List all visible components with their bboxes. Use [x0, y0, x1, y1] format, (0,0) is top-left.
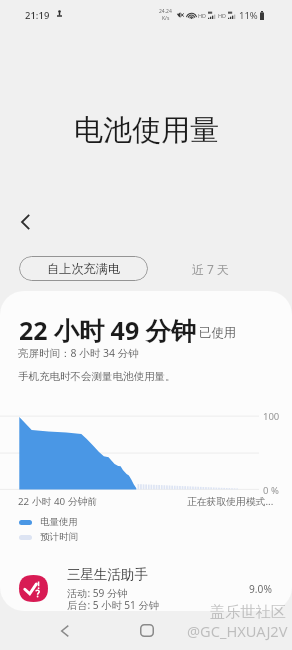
staticText: 盖乐世社区	[210, 602, 286, 621]
staticText: 电池使用量	[74, 112, 219, 149]
staticText: 近 7 天	[192, 261, 230, 277]
staticText: 正在获取使用模式...	[187, 495, 274, 508]
button[interactable]: Back	[9, 206, 41, 238]
staticText: 亮屏时间：8 小时 34 分钟	[18, 346, 139, 360]
staticText: 三星生活助手	[67, 566, 148, 583]
button[interactable]: 自上次充满电	[19, 256, 148, 281]
staticText: 预计时间	[40, 531, 78, 543]
staticText: K/s	[162, 15, 170, 22]
staticText: @GC_HXUAJ2V	[187, 621, 288, 641]
staticText: 0 %	[263, 484, 279, 497]
staticText: 22 小时 49 分钟	[19, 313, 196, 347]
staticText: 11%	[239, 9, 258, 22]
staticText: 活动: 59 分钟	[67, 586, 128, 600]
staticText: 自上次充满电	[47, 261, 121, 276]
staticText: 电量使用	[40, 516, 78, 528]
button[interactable]: Recents	[211, 611, 243, 650]
staticText: 24.24	[159, 8, 172, 15]
staticText: 已使用	[199, 325, 237, 341]
button[interactable]: 近 7 天	[182, 256, 240, 281]
staticText: 后台: 5 小时 51 分钟	[67, 598, 159, 611]
staticText: 9.0%	[249, 582, 272, 596]
staticText: 手机充电时不会测量电池使用量。	[18, 370, 176, 383]
staticText: 21:19	[25, 9, 50, 22]
staticText: HD	[198, 12, 207, 19]
button[interactable]: Back	[49, 611, 81, 650]
button[interactable]: 三星生活助手	[0, 565, 292, 611]
staticText: 100	[263, 410, 280, 423]
button[interactable]: Home	[131, 611, 163, 650]
staticText: HD	[218, 12, 227, 19]
staticText: 22 小时 40 分钟前	[18, 495, 98, 508]
